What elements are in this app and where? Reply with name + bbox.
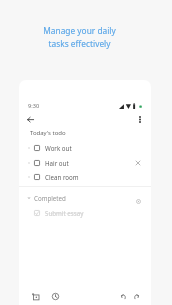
button[interactable]: Visibility [133, 196, 143, 206]
button[interactable]: Submit essay [19, 206, 151, 219]
button[interactable]: Clean room [19, 170, 151, 183]
button[interactable]: Delete task [133, 158, 143, 168]
staticText: Completed [34, 194, 66, 202]
button[interactable]: Hair out [19, 156, 151, 169]
staticText: 9:30 [28, 102, 40, 110]
button[interactable]: More options [133, 113, 146, 126]
button[interactable]: Undo [117, 290, 129, 302]
staticText: Hair out [45, 159, 69, 167]
button[interactable]: Add image [29, 290, 41, 302]
button[interactable]: Back [24, 113, 37, 126]
button[interactable]: Completed [19, 192, 151, 204]
staticText: Today's todo [30, 129, 66, 137]
staticText: Manage your daily tasks effectively [43, 25, 116, 49]
staticText: Submit essay [45, 209, 84, 217]
button[interactable]: Work out [19, 141, 151, 154]
staticText: Work out [45, 144, 72, 152]
button[interactable]: Redo [130, 290, 142, 302]
button[interactable]: Set reminder [49, 290, 61, 302]
staticText: Clean room [45, 173, 79, 181]
